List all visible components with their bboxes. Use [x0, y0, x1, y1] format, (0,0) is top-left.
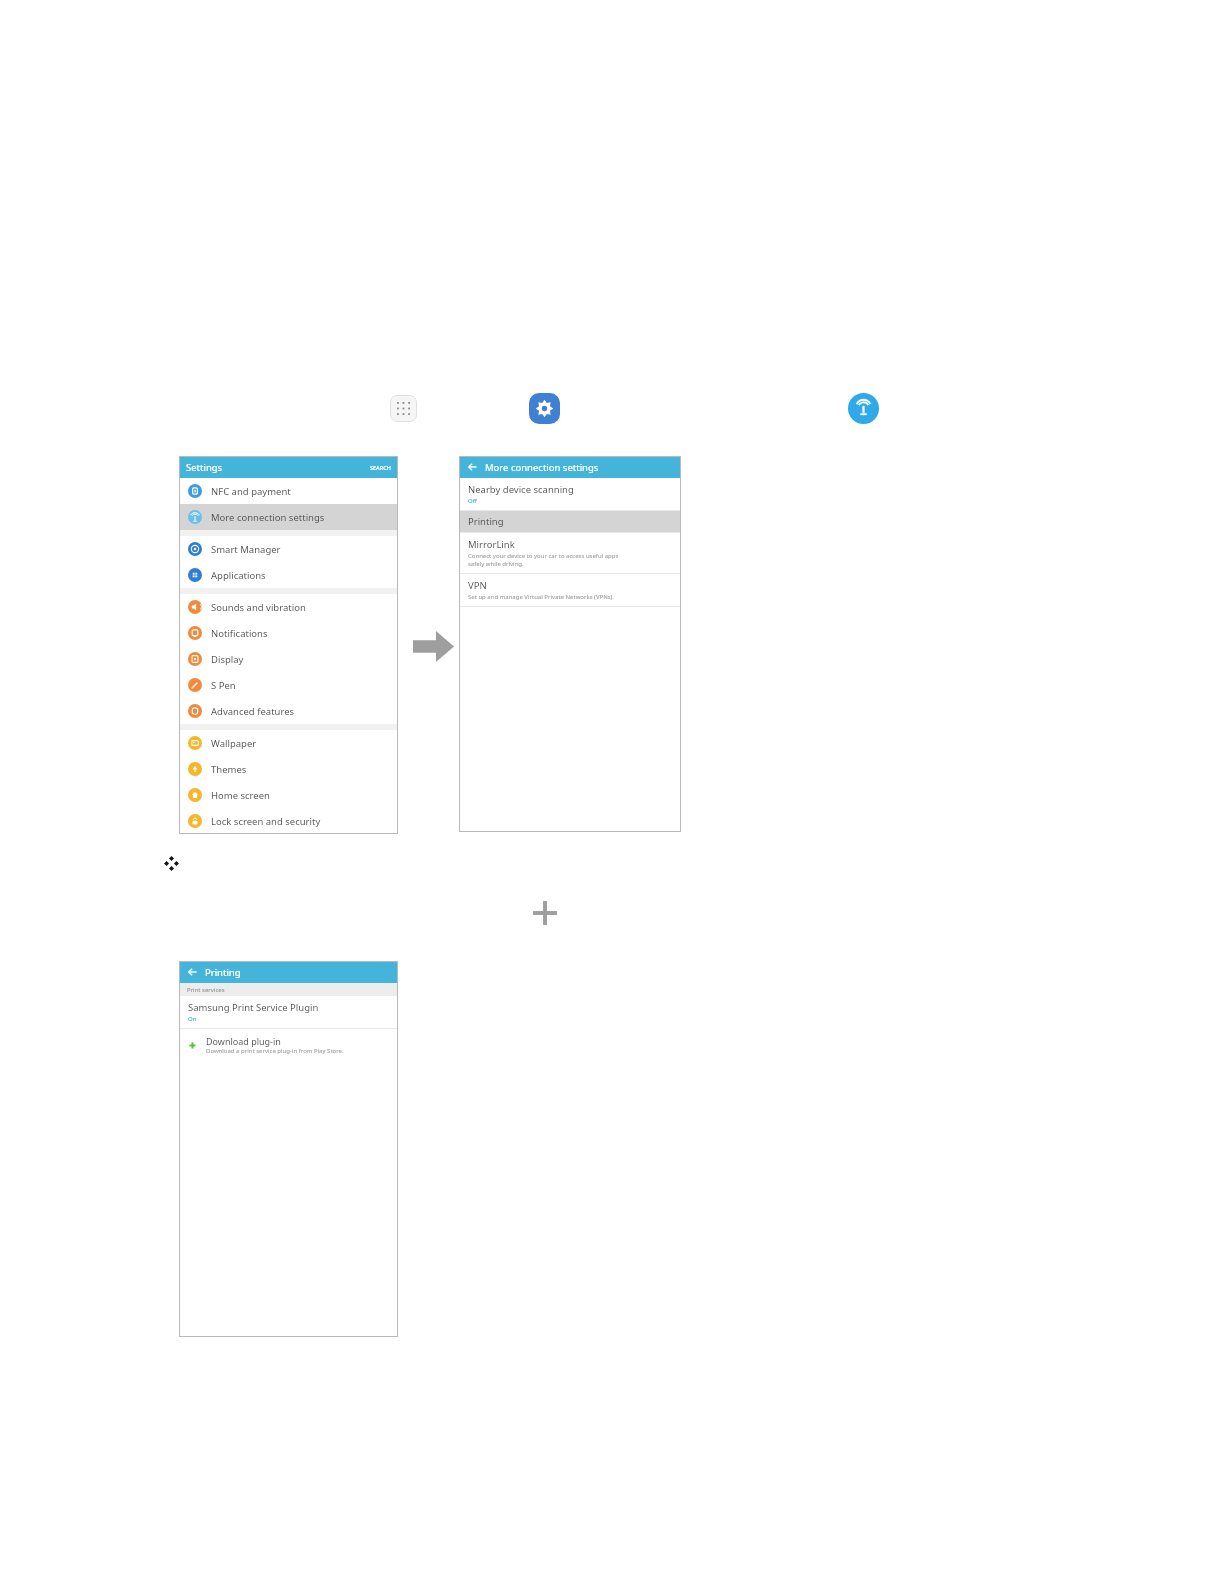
- staticText: On: [188, 1015, 197, 1023]
- button[interactable]: MirrorLink: [459, 533, 681, 573]
- staticText: safely while driving.: [468, 560, 524, 568]
- staticText: Set up and manage Virtual Private Networ…: [468, 593, 614, 601]
- staticText: Printing: [205, 966, 391, 979]
- button[interactable]: Apps: [390, 395, 417, 422]
- button[interactable]: Display: [179, 646, 398, 672]
- button[interactable]: Home screen: [179, 782, 398, 808]
- button[interactable]: Notifications: [179, 620, 398, 646]
- button[interactable]: Back: [466, 461, 478, 473]
- button[interactable]: NFC and payment: [179, 478, 398, 504]
- staticText: Applications: [211, 569, 266, 582]
- staticText: Notifications: [211, 627, 268, 640]
- staticText: Advanced features: [211, 705, 295, 718]
- button[interactable]: S Pen: [179, 672, 398, 698]
- button[interactable]: Download plug-in: [179, 1029, 398, 1061]
- button[interactable]: Printing: [459, 511, 681, 532]
- staticText: Printing: [468, 515, 504, 528]
- staticText: More connection settings: [211, 511, 325, 524]
- button[interactable]: Settings: [529, 393, 560, 424]
- button[interactable]: More connection settings: [179, 504, 398, 530]
- staticText: Lock screen and security: [211, 815, 321, 828]
- staticText: Display: [211, 653, 244, 666]
- staticText: Connect your device to your car to acces…: [468, 552, 619, 560]
- staticText: Print services: [187, 986, 225, 994]
- button[interactable]: More connection settings: [848, 393, 879, 424]
- staticText: Off: [468, 497, 477, 505]
- button[interactable]: Nearby device scanning: [459, 478, 681, 510]
- button[interactable]: Sounds and vibration: [179, 594, 398, 620]
- staticText: Themes: [211, 763, 247, 776]
- button[interactable]: Samsung Print Service Plugin: [179, 996, 398, 1028]
- staticText: S Pen: [211, 679, 236, 692]
- staticText: Settings: [186, 461, 370, 474]
- button[interactable]: Back: [186, 966, 198, 978]
- staticText: Sounds and vibration: [211, 601, 306, 614]
- staticText: Smart Manager: [211, 543, 281, 556]
- staticText: NFC and payment: [211, 485, 291, 498]
- button[interactable]: Applications: [179, 562, 398, 588]
- staticText: Samsung Print Service Plugin: [188, 1001, 319, 1014]
- button[interactable]: SEARCH: [370, 464, 391, 471]
- staticText: Download plug-in: [206, 1035, 281, 1047]
- staticText: Nearby device scanning: [468, 483, 574, 496]
- button[interactable]: Wallpaper: [179, 730, 398, 756]
- staticText: Download a print service plug-in from Pl…: [206, 1047, 344, 1055]
- button[interactable]: VPN: [459, 574, 681, 606]
- staticText: MirrorLink: [468, 538, 515, 551]
- button[interactable]: Themes: [179, 756, 398, 782]
- button[interactable]: Advanced features: [179, 698, 398, 724]
- staticText: Wallpaper: [211, 737, 257, 750]
- staticText: More connection settings: [485, 461, 674, 474]
- staticText: Home screen: [211, 789, 270, 802]
- staticText: VPN: [468, 579, 487, 592]
- button[interactable]: Smart Manager: [179, 536, 398, 562]
- button[interactable]: Lock screen and security: [179, 808, 398, 834]
